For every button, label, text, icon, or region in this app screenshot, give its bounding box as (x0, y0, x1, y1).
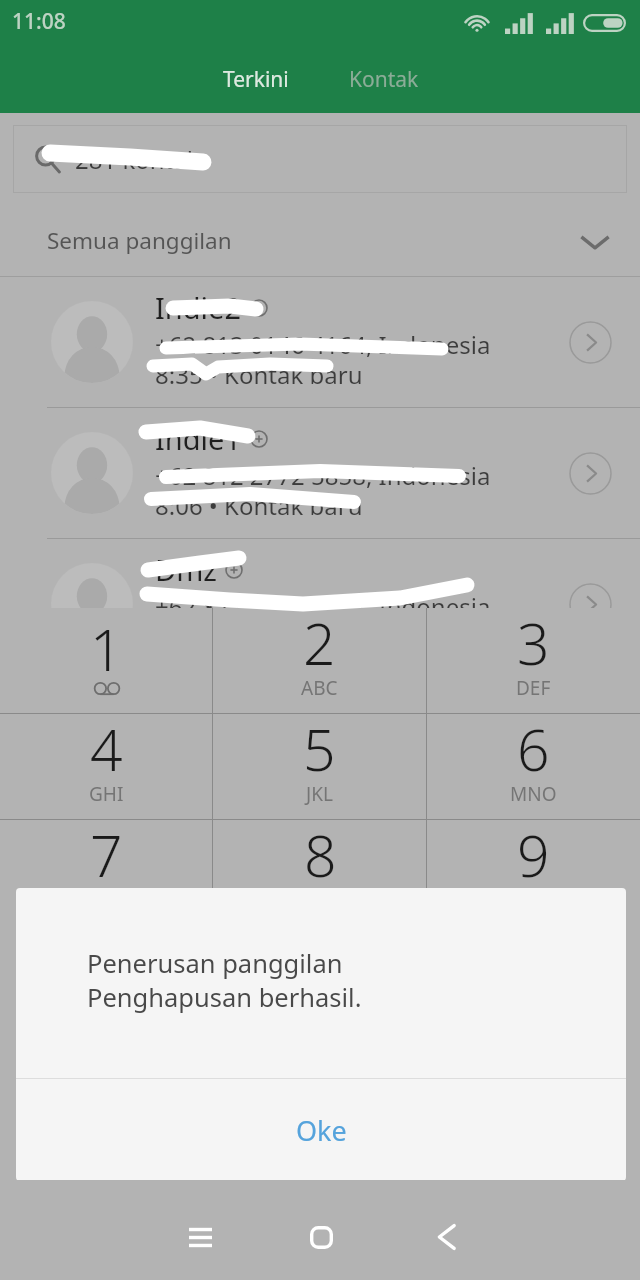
button[interactable]: 7 (0, 820, 212, 925)
staticText: +62 813 0146 4164, Indonesia (155, 328, 491, 361)
button[interactable]: Menu (170, 1191, 230, 1280)
staticText: JKL (306, 781, 333, 807)
staticText: ABC (301, 675, 338, 701)
staticText: Penerusan panggilan (87, 946, 343, 981)
button[interactable]: 281 kontak (13, 125, 627, 193)
staticText: 2 (303, 604, 336, 682)
button[interactable]: 9 (427, 820, 640, 925)
staticText: 1 (90, 610, 123, 688)
staticText: 4 (90, 710, 123, 788)
staticText: WXYZ (508, 887, 559, 913)
button[interactable]: Dmz (0, 539, 640, 669)
button[interactable]: 3 (427, 608, 640, 713)
staticText: 11:08 (12, 7, 66, 36)
staticText: +62 877 7887 7988, Indonesia (155, 590, 491, 623)
staticText: Indie1 (155, 419, 242, 458)
staticText: 5 (303, 710, 336, 788)
button[interactable]: Oke (16, 1079, 626, 1181)
button[interactable]: 1 (0, 608, 212, 713)
staticText: GHI (89, 781, 124, 807)
staticText: Penghapusan berhasil. (87, 980, 362, 1015)
button[interactable]: Detail kontak (559, 442, 621, 504)
staticText: +62 812 2772 5858, Indonesia (155, 459, 491, 492)
button[interactable]: 5 (213, 714, 426, 819)
staticText: 9 (517, 816, 550, 894)
button[interactable]: 4 (0, 714, 212, 819)
button[interactable]: Indie1 (0, 408, 640, 538)
staticText: 7:55 • Kontak baru (155, 620, 363, 653)
button[interactable]: 2 (213, 608, 426, 713)
staticText: 8:35 • Kontak baru (155, 358, 363, 391)
button[interactable]: Indie2 (0, 277, 640, 407)
staticText: 8 (304, 816, 337, 894)
staticText: Semua panggilan (47, 225, 232, 256)
button[interactable]: Back (416, 1191, 476, 1280)
staticText: TUV (302, 887, 338, 913)
staticText: Terkini (223, 65, 289, 94)
staticText: Oke (296, 1112, 347, 1149)
button[interactable]: 8 (213, 820, 426, 925)
button[interactable]: Detail kontak (559, 311, 621, 373)
staticText: 281 kontak (75, 143, 200, 176)
staticText: PQRS (82, 887, 131, 913)
button[interactable]: Home (291, 1191, 351, 1280)
staticText: Kontak (349, 65, 419, 94)
staticText: 7 (90, 816, 123, 894)
button[interactable]: Detail kontak (559, 573, 621, 635)
button[interactable]: 6 (427, 714, 640, 819)
button[interactable]: Semua panggilan (0, 205, 640, 276)
staticText: Dmz (155, 550, 217, 589)
staticText: 6 (517, 710, 550, 788)
staticText: MNO (510, 781, 557, 807)
button[interactable]: Terkini (192, 57, 320, 101)
staticText: Indie2 (155, 288, 242, 327)
staticText: 3 (517, 604, 550, 682)
button[interactable]: Kontak (320, 57, 448, 101)
staticText: DEF (516, 675, 551, 701)
staticText: 8:06 • Kontak baru (155, 489, 363, 522)
